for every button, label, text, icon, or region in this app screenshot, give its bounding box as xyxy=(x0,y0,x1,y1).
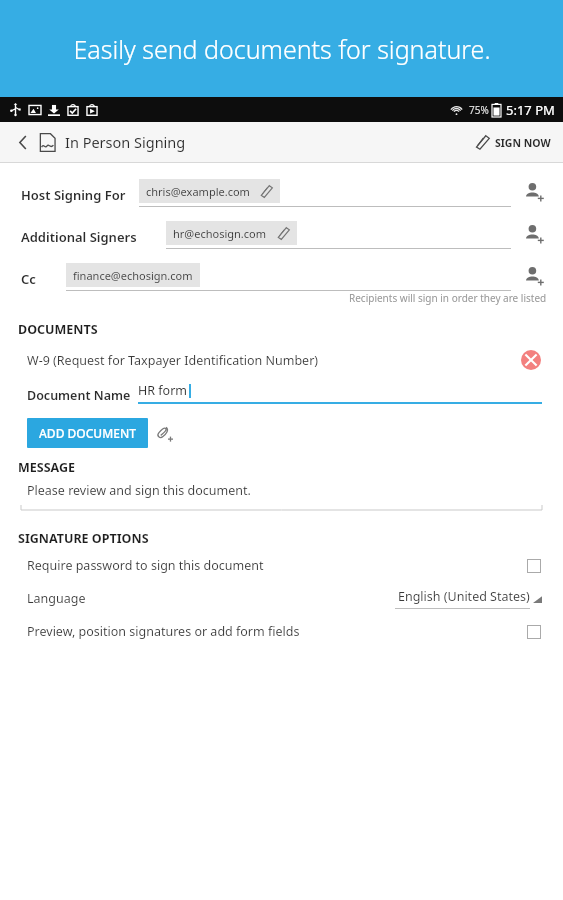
button[interactable]: ADD DOCUMENT xyxy=(27,418,148,448)
staticText: 5:17 PM xyxy=(506,101,555,119)
button[interactable]: HR form xyxy=(138,382,542,404)
staticText: Recipients will sign in order they are l… xyxy=(349,291,547,305)
staticText: Preview, position signatures or add form… xyxy=(27,623,300,640)
staticText: SIGN NOW xyxy=(495,136,551,150)
button[interactable]: Language xyxy=(27,588,542,609)
button[interactable]: Back xyxy=(10,129,36,155)
button[interactable]: SIGN NOW xyxy=(475,135,563,150)
button[interactable]: Add recipient xyxy=(519,219,549,249)
staticText: English (United States) xyxy=(398,588,530,605)
staticText: SIGNATURE OPTIONS xyxy=(18,530,149,547)
button[interactable]: Add recipient xyxy=(519,177,549,207)
staticText: Cc xyxy=(21,270,36,288)
staticText: Host Signing For xyxy=(21,186,126,204)
button[interactable]: Add recipient xyxy=(519,261,549,291)
staticText: Additional Signers xyxy=(21,228,137,246)
button[interactable]: finance@echosign.com xyxy=(66,263,511,291)
staticText: 75% xyxy=(469,103,489,117)
button[interactable]: Remove document xyxy=(517,346,545,374)
button[interactable]: chris@example.com xyxy=(139,179,511,207)
staticText: In Person Signing xyxy=(65,132,186,152)
button[interactable]: hr@echosign.com xyxy=(166,221,511,249)
button[interactable]: Please review and sign this document. xyxy=(21,482,542,510)
staticText: Language xyxy=(27,590,86,607)
staticText: hr@echosign.com xyxy=(173,226,267,241)
staticText: HR form xyxy=(138,382,188,399)
staticText: Please review and sign this document. xyxy=(27,482,251,499)
button[interactable]: Attach file xyxy=(148,417,180,449)
staticText: Require password to sign this document xyxy=(27,557,264,574)
staticText: Easily send documents for signature. xyxy=(73,32,491,66)
staticText: DOCUMENTS xyxy=(18,321,98,338)
staticText: chris@example.com xyxy=(146,184,250,199)
staticText: ADD DOCUMENT xyxy=(39,425,136,441)
staticText: Document Name xyxy=(27,387,131,404)
button[interactable]: Require password to sign this document xyxy=(27,557,541,574)
button[interactable]: Preview, position signatures or add form… xyxy=(27,623,541,640)
staticText: finance@echosign.com xyxy=(73,268,193,283)
staticText: W-9 (Request for Taxpayer Identification… xyxy=(27,352,319,369)
staticText: MESSAGE xyxy=(18,459,76,476)
